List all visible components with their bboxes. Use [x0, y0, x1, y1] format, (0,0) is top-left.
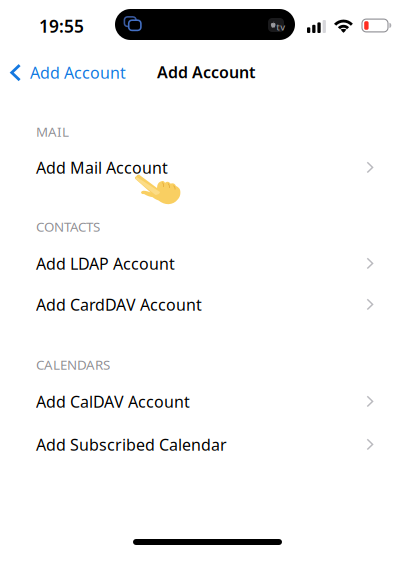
button[interactable]: Add Account: [0, 54, 134, 91]
staticText: Add Mail Account: [36, 157, 168, 178]
staticText: Add Account: [30, 62, 126, 83]
button[interactable]: Add Subscribed Calendar: [0, 424, 412, 465]
staticText: Add LDAP Account: [36, 253, 175, 274]
staticText: Add CardDAV Account: [36, 294, 202, 315]
staticText: tv: [276, 21, 285, 33]
staticText: MAIL: [36, 123, 69, 140]
staticText: Add Subscribed Calendar: [36, 434, 227, 455]
staticText: Add CalDAV Account: [36, 391, 190, 412]
button[interactable]: Add Mail Account: [0, 147, 412, 188]
button[interactable]: Add LDAP Account: [0, 243, 412, 284]
staticText: CONTACTS: [36, 218, 100, 235]
button[interactable]: Add CalDAV Account: [0, 381, 412, 422]
staticText: CALENDARS: [36, 356, 110, 373]
staticText: 19:55: [39, 14, 84, 37]
staticText: Add Account: [157, 61, 255, 83]
button[interactable]: Add CardDAV Account: [0, 284, 412, 325]
